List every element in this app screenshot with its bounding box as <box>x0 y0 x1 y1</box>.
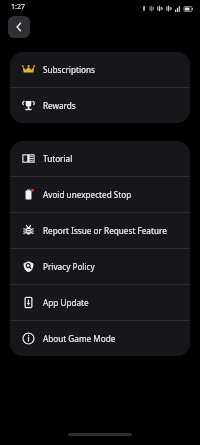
staticText: Privacy Policy <box>43 261 95 272</box>
staticText: Rewards <box>43 100 76 111</box>
button[interactable]: App Update <box>10 285 190 320</box>
button[interactable]: Back <box>8 16 30 38</box>
button[interactable]: Report Issue or Request Feature <box>10 213 190 248</box>
staticText: About Game Mode <box>43 333 116 344</box>
staticText: Tutorial <box>43 153 73 164</box>
staticText: Report Issue or Request Feature <box>43 225 167 236</box>
button[interactable]: Avoid unexpected Stop <box>10 177 190 212</box>
button[interactable]: Tutorial <box>10 141 190 176</box>
staticText: Subscriptions <box>43 64 95 75</box>
button[interactable]: About Game Mode <box>10 321 190 356</box>
staticText: 1:27 <box>11 2 25 12</box>
staticText: Avoid unexpected Stop <box>43 189 132 200</box>
button[interactable]: Rewards <box>10 88 190 123</box>
button[interactable]: Subscriptions <box>10 52 190 87</box>
button[interactable]: Privacy Policy <box>10 249 190 284</box>
staticText: App Update <box>43 297 89 308</box>
